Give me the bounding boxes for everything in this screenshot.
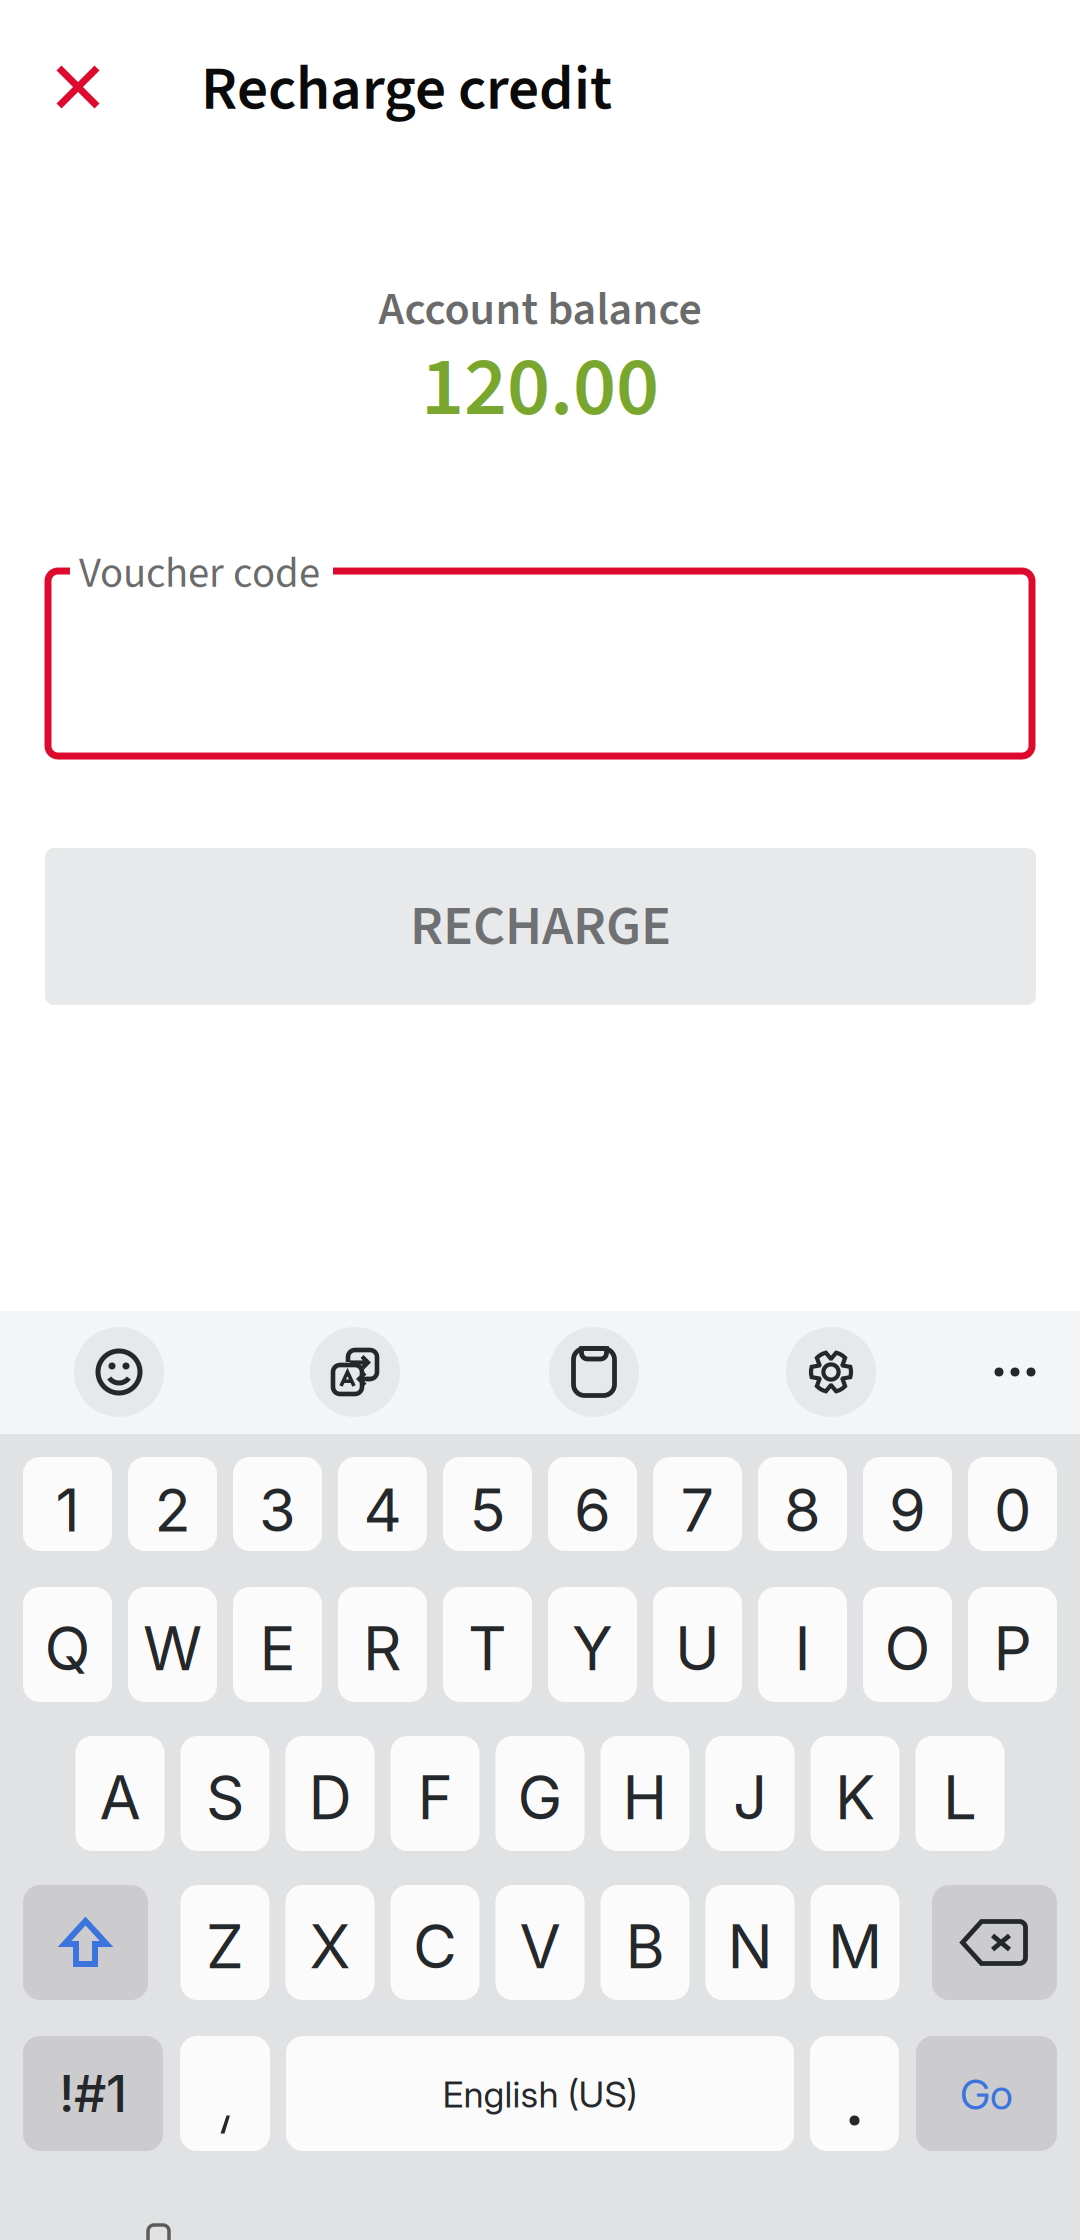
- button[interactable]: M: [810, 1885, 899, 2000]
- staticText: H: [622, 1761, 667, 1834]
- staticText: 8: [784, 1474, 821, 1546]
- staticText: 5: [469, 1474, 505, 1546]
- staticText: 6: [574, 1474, 611, 1546]
- button[interactable]: Z: [180, 1885, 269, 2000]
- staticText: D: [308, 1761, 351, 1834]
- button[interactable]: More options: [970, 1327, 1060, 1417]
- button[interactable]: H: [600, 1736, 689, 1851]
- staticText: M: [828, 1910, 882, 1983]
- staticText: S: [206, 1761, 244, 1834]
- button[interactable]: Comma: [180, 2036, 270, 2151]
- staticText: G: [517, 1761, 562, 1834]
- staticText: Go: [960, 2069, 1013, 2119]
- button[interactable]: 1: [23, 1457, 112, 1551]
- button[interactable]: Period: [810, 2036, 899, 2151]
- staticText: W: [143, 1612, 202, 1685]
- button[interactable]: B: [600, 1885, 689, 2000]
- button[interactable]: W: [128, 1587, 217, 1702]
- button[interactable]: Close: [23, 32, 133, 142]
- button[interactable]: 5: [443, 1457, 532, 1551]
- button[interactable]: A: [75, 1736, 164, 1851]
- button[interactable]: D: [285, 1736, 374, 1851]
- staticText: 2: [154, 1474, 190, 1546]
- button[interactable]: Keyboard settings: [786, 1327, 876, 1417]
- staticText: T: [468, 1612, 507, 1685]
- button[interactable]: 2: [128, 1457, 217, 1551]
- button[interactable]: F: [390, 1736, 479, 1851]
- staticText: I: [794, 1612, 810, 1685]
- staticText: Recharge credit: [201, 46, 612, 133]
- button[interactable]: Q: [23, 1587, 112, 1702]
- button[interactable]: 9: [863, 1457, 952, 1551]
- staticText: J: [733, 1761, 767, 1834]
- staticText: V: [519, 1910, 560, 1983]
- button[interactable]: L: [915, 1736, 1004, 1851]
- button[interactable]: English (US): [286, 2036, 794, 2151]
- staticText: 0: [994, 1474, 1031, 1546]
- button[interactable]: 4: [338, 1457, 427, 1551]
- staticText: L: [943, 1761, 977, 1834]
- button[interactable]: RECHARGE: [45, 848, 1036, 1005]
- staticText: 1: [55, 1474, 79, 1546]
- staticText: O: [884, 1612, 930, 1685]
- staticText: B: [625, 1910, 664, 1983]
- button[interactable]: Y: [548, 1587, 637, 1702]
- staticText: English (US): [442, 2073, 637, 2116]
- staticText: Q: [44, 1612, 90, 1685]
- staticText: 120.00: [421, 328, 659, 448]
- button[interactable]: T: [443, 1587, 532, 1702]
- button[interactable]: 6: [548, 1457, 637, 1551]
- staticText: Account balance: [378, 277, 701, 342]
- button[interactable]: V: [495, 1885, 584, 2000]
- staticText: Voucher code: [79, 543, 320, 604]
- staticText: Z: [206, 1910, 244, 1983]
- button[interactable]: O: [863, 1587, 952, 1702]
- button[interactable]: Backspace: [932, 1885, 1057, 2000]
- staticText: RECHARGE: [410, 887, 671, 966]
- staticText: K: [835, 1761, 875, 1834]
- staticText: 3: [259, 1474, 296, 1546]
- staticText: R: [363, 1612, 402, 1685]
- staticText: U: [675, 1612, 720, 1685]
- button[interactable]: 8: [758, 1457, 847, 1551]
- button[interactable]: Go: [916, 2036, 1057, 2151]
- staticText: E: [259, 1612, 295, 1685]
- button[interactable]: Clipboard: [549, 1327, 639, 1417]
- button[interactable]: !#1: [23, 2036, 163, 2151]
- button[interactable]: E: [233, 1587, 322, 1702]
- button[interactable]: I: [758, 1587, 847, 1702]
- staticText: 4: [363, 1474, 401, 1546]
- button[interactable]: Emoji: [74, 1327, 164, 1417]
- staticText: F: [417, 1761, 452, 1834]
- button[interactable]: C: [390, 1885, 479, 2000]
- staticText: !#1: [59, 2063, 127, 2124]
- button[interactable]: 0: [968, 1457, 1057, 1551]
- button[interactable]: J: [705, 1736, 794, 1851]
- staticText: 7: [680, 1474, 714, 1546]
- button[interactable]: 3: [233, 1457, 322, 1551]
- button[interactable]: K: [810, 1736, 899, 1851]
- staticText: X: [309, 1910, 350, 1983]
- button[interactable]: S: [180, 1736, 269, 1851]
- button[interactable]: U: [653, 1587, 742, 1702]
- button[interactable]: Translate: [310, 1327, 400, 1417]
- staticText: 9: [889, 1474, 926, 1546]
- staticText: A: [99, 1761, 140, 1834]
- button[interactable]: N: [705, 1885, 794, 2000]
- button[interactable]: X: [285, 1885, 374, 2000]
- staticText: N: [727, 1910, 772, 1983]
- button[interactable]: Shift: [23, 1885, 148, 2000]
- button[interactable]: R: [338, 1587, 427, 1702]
- button[interactable]: P: [968, 1587, 1057, 1702]
- staticText: Y: [572, 1612, 613, 1685]
- staticText: P: [993, 1612, 1031, 1685]
- button[interactable]: 7: [653, 1457, 742, 1551]
- staticText: C: [413, 1910, 457, 1983]
- button[interactable]: G: [495, 1736, 584, 1851]
